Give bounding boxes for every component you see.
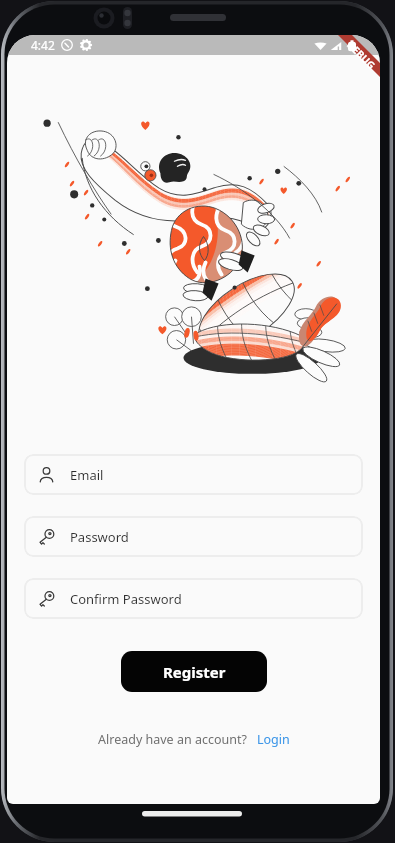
button[interactable]: Email bbox=[24, 454, 363, 495]
staticText: Password bbox=[70, 528, 129, 546]
staticText: Email bbox=[70, 466, 104, 484]
staticText: 4:42 bbox=[31, 37, 55, 53]
button[interactable]: Confirm Password bbox=[24, 578, 363, 619]
staticText: Confirm Password bbox=[70, 590, 182, 608]
staticText: Login bbox=[257, 731, 290, 748]
staticText: Register bbox=[163, 662, 226, 682]
staticText: Already have an account? bbox=[98, 731, 247, 748]
button[interactable]: Register bbox=[121, 651, 267, 692]
staticText: DEBUG bbox=[344, 38, 379, 72]
button[interactable]: Password bbox=[24, 516, 363, 557]
button[interactable]: Login bbox=[257, 731, 290, 748]
